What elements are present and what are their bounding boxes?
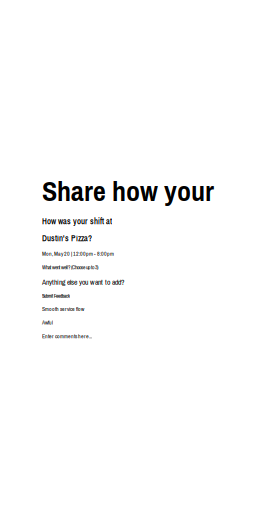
staticText: Share how your [42, 172, 214, 210]
staticText: What went well? (Choose up to 3) [42, 264, 98, 271]
staticText: Enter comments here... [42, 332, 92, 340]
staticText: Smooth service flow [42, 305, 84, 313]
staticText: Submit Feedback [42, 293, 70, 299]
staticText: Dustin's Pizza? [42, 233, 92, 244]
staticText: How was your shift at [42, 216, 112, 227]
staticText: Awful [42, 319, 53, 326]
staticText: Anything else you want to add? [42, 277, 124, 287]
staticText: Mon, May 20 | 12:00pm - 8:00pm [42, 250, 114, 258]
